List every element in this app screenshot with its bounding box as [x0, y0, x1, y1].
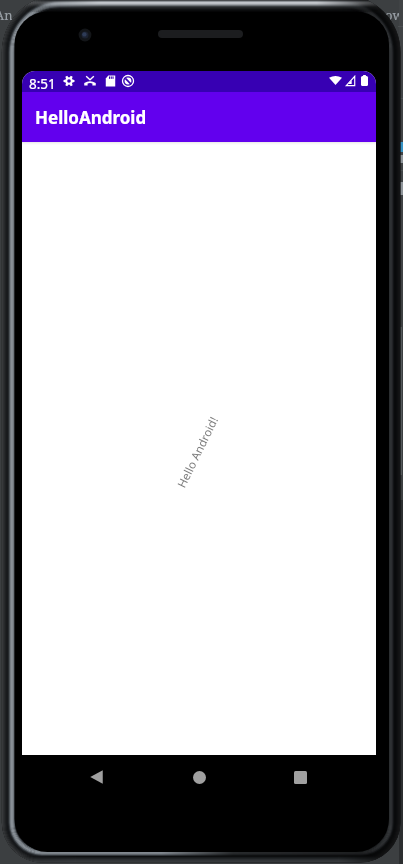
button[interactable]: Home: [177, 755, 221, 799]
staticText: Hello Android!: [174, 413, 222, 490]
staticText: 8:51: [29, 75, 56, 93]
button[interactable]: Back: [74, 755, 118, 799]
staticText: An: [0, 6, 13, 24]
staticText: ow: [385, 6, 403, 24]
staticText: HelloAndroid: [35, 106, 147, 129]
button[interactable]: Recent apps: [278, 755, 322, 799]
button[interactable]: HelloAndroid: [22, 92, 376, 142]
